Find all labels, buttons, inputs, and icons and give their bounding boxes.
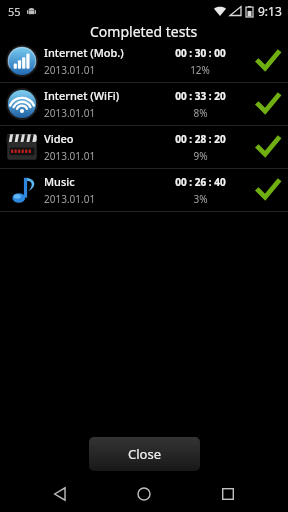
staticText: Completed tests [90, 22, 198, 40]
other: Completed [256, 177, 280, 203]
staticText: Close [128, 445, 161, 463]
button[interactable]: Back [36, 476, 84, 512]
button[interactable]: Internet (Mob.) [0, 40, 288, 82]
other: Completed [256, 48, 280, 74]
other: Completed [256, 134, 280, 160]
button[interactable]: Internet (WiFi) [0, 83, 288, 125]
staticText: 3% [193, 192, 208, 206]
staticText: 2013.01.01 [44, 192, 96, 206]
button[interactable]: Video [0, 126, 288, 168]
staticText: 12% [190, 63, 210, 77]
button[interactable]: Recent apps [204, 476, 252, 512]
staticText: 00 : 28 : 20 [175, 132, 226, 146]
staticText: Music [44, 174, 75, 189]
staticText: 55 [8, 4, 21, 19]
staticText: Internet (Mob.) [44, 45, 124, 60]
staticText: 00 : 30 : 00 [175, 46, 226, 60]
staticText: 9% [193, 149, 208, 163]
staticText: 8% [193, 106, 208, 120]
staticText: 2013.01.01 [44, 63, 96, 77]
button[interactable]: Home [120, 476, 168, 512]
other: Completed [256, 91, 280, 117]
staticText: Video [44, 131, 74, 146]
staticText: 2013.01.01 [44, 149, 96, 163]
staticText: 00 : 26 : 40 [175, 175, 226, 189]
staticText: 9:13 [258, 3, 282, 19]
button[interactable]: Music [0, 169, 288, 211]
button[interactable]: Close [89, 437, 200, 471]
staticText: 00 : 33 : 20 [175, 89, 226, 103]
staticText: 2013.01.01 [44, 106, 96, 120]
staticText: Internet (WiFi) [44, 88, 120, 103]
